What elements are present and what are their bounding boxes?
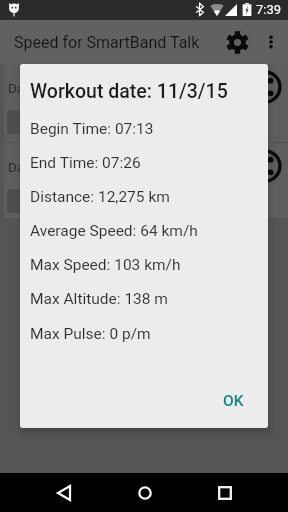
button[interactable]: OK — [211, 383, 255, 419]
staticText: OK — [223, 392, 244, 410]
button[interactable]: Share — [245, 67, 285, 107]
staticText: Speed for SmartBand Talk — [14, 33, 200, 52]
button[interactable]: Recent apps — [205, 473, 244, 512]
staticText: End Time: 07:26 — [30, 154, 141, 172]
staticText: Workout date: 11/3/15 — [30, 80, 228, 103]
button[interactable]: Back — [44, 473, 83, 512]
button[interactable]: Home — [125, 473, 164, 512]
staticText: Begin Time: 07:13 — [30, 120, 154, 138]
button[interactable]: More options — [249, 20, 288, 64]
button[interactable]: Settings — [215, 20, 259, 64]
button[interactable]: Date: 11/3/15 — [4, 143, 288, 218]
staticText: Average Speed: 64 km/h — [30, 222, 198, 240]
staticText: Date: 11/3/15 — [8, 159, 92, 175]
button[interactable]: Share — [245, 146, 285, 186]
staticText: Distance: 12,275 km — [30, 188, 170, 206]
staticText: 7:39 — [256, 2, 282, 17]
staticText: Max Altitude: 138 m — [30, 290, 168, 308]
button[interactable]: Date: 11/3/15 — [4, 64, 288, 142]
staticText: Max Speed: 103 km/h — [30, 256, 181, 274]
staticText: Date: 11/3/15 — [8, 80, 92, 96]
staticText: Max Pulse: 0 p/m — [30, 325, 151, 343]
